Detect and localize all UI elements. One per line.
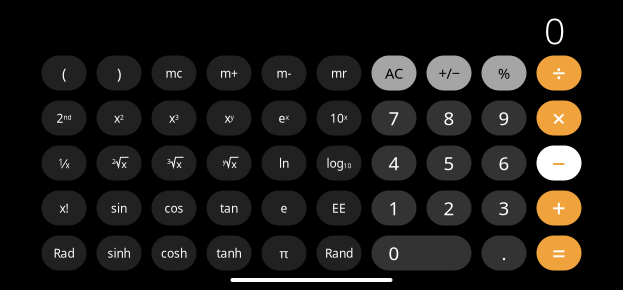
staticText: )	[117, 63, 121, 83]
button[interactable]: %	[481, 55, 526, 90]
button[interactable]: 0	[371, 235, 471, 270]
staticText: 5	[443, 151, 454, 175]
staticText: %	[498, 63, 510, 83]
staticText: EE	[332, 200, 346, 216]
button[interactable]: AC	[371, 55, 416, 90]
staticText: tan	[220, 200, 238, 216]
staticText: m-	[276, 65, 291, 81]
staticText: π	[279, 244, 288, 262]
button[interactable]: m+	[206, 55, 251, 90]
button[interactable]: .	[481, 235, 526, 270]
staticText: −	[552, 147, 566, 179]
button[interactable]: cos	[151, 190, 196, 225]
button[interactable]: 2nd	[41, 100, 86, 135]
staticText: 10x	[330, 110, 348, 126]
staticText: 9	[498, 106, 509, 130]
staticText: e	[280, 200, 287, 216]
button[interactable]: ex	[261, 100, 306, 135]
button[interactable]: 1⁄x	[41, 145, 86, 180]
button[interactable]: 2	[96, 145, 141, 180]
staticText: m+	[220, 65, 238, 81]
button[interactable]: ×	[536, 100, 581, 135]
button[interactable]: x!	[41, 190, 86, 225]
button[interactable]: x2	[96, 100, 141, 135]
button[interactable]: m-	[261, 55, 306, 90]
button[interactable]: ÷	[536, 55, 581, 90]
button[interactable]: 4	[371, 145, 416, 180]
staticText: x	[121, 157, 127, 171]
button[interactable]: )	[96, 55, 141, 90]
button[interactable]: =	[536, 235, 581, 270]
staticText: x!	[59, 200, 68, 216]
staticText: .	[501, 241, 506, 265]
staticText: log10	[326, 155, 351, 171]
button[interactable]: x3	[151, 100, 196, 135]
staticText: Rand	[325, 245, 353, 261]
staticText: AC	[385, 63, 403, 83]
button[interactable]: 2	[426, 190, 471, 225]
button[interactable]: sin	[96, 190, 141, 225]
button[interactable]: ln	[261, 145, 306, 180]
staticText: 0	[388, 241, 399, 265]
button[interactable]: EE	[316, 190, 361, 225]
staticText: 2	[443, 196, 454, 220]
staticText: cos	[164, 200, 183, 216]
staticText: xy	[224, 110, 233, 126]
staticText: Rad	[53, 245, 74, 261]
staticText: 2nd	[56, 110, 71, 126]
staticText: 8	[443, 106, 454, 130]
button[interactable]: 3	[151, 145, 196, 180]
staticText: 3	[167, 157, 171, 166]
button[interactable]: sinh	[96, 235, 141, 270]
button[interactable]: +	[536, 190, 581, 225]
staticText: 0	[544, 5, 565, 55]
button[interactable]: 8	[426, 100, 471, 135]
staticText: 2	[112, 157, 116, 166]
button[interactable]: 7	[371, 100, 416, 135]
button[interactable]: log10	[316, 145, 361, 180]
button[interactable]: y	[206, 145, 251, 180]
staticText: y	[222, 157, 225, 166]
button[interactable]: −	[536, 145, 581, 180]
button[interactable]: 3	[481, 190, 526, 225]
staticText: x2	[114, 110, 124, 126]
staticText: 1	[388, 196, 399, 220]
staticText: +/−	[438, 63, 459, 83]
button[interactable]: tanh	[206, 235, 251, 270]
staticText: 6	[498, 151, 509, 175]
staticText: sinh	[107, 245, 130, 261]
button[interactable]: π	[261, 235, 306, 270]
staticText: x	[231, 157, 237, 171]
button[interactable]: 1	[371, 190, 416, 225]
staticText: +	[552, 192, 566, 224]
button[interactable]: Rand	[316, 235, 361, 270]
staticText: ln	[279, 155, 289, 171]
staticText: x	[176, 157, 182, 171]
button[interactable]: 5	[426, 145, 471, 180]
staticText: ×	[552, 102, 566, 134]
button[interactable]: mc	[151, 55, 196, 90]
button[interactable]: cosh	[151, 235, 196, 270]
button[interactable]: 9	[481, 100, 526, 135]
button[interactable]: tan	[206, 190, 251, 225]
staticText: tanh	[216, 245, 241, 261]
staticText: sin	[111, 200, 127, 216]
staticText: x3	[169, 110, 179, 126]
button[interactable]: (	[41, 55, 86, 90]
button[interactable]: 6	[481, 145, 526, 180]
staticText: 3	[498, 196, 509, 220]
button[interactable]: Rad	[41, 235, 86, 270]
staticText: 1⁄x	[58, 154, 69, 172]
staticText: ex	[278, 110, 289, 126]
button[interactable]: xy	[206, 100, 251, 135]
button[interactable]: 10x	[316, 100, 361, 135]
staticText: 4	[388, 151, 399, 175]
staticText: 7	[388, 106, 399, 130]
staticText: cosh	[161, 245, 187, 261]
button[interactable]: e	[261, 190, 306, 225]
button[interactable]: mr	[316, 55, 361, 90]
staticText: (	[62, 63, 66, 83]
staticText: ÷	[552, 57, 566, 89]
staticText: mr	[331, 65, 347, 81]
button[interactable]: +/−	[426, 55, 471, 90]
